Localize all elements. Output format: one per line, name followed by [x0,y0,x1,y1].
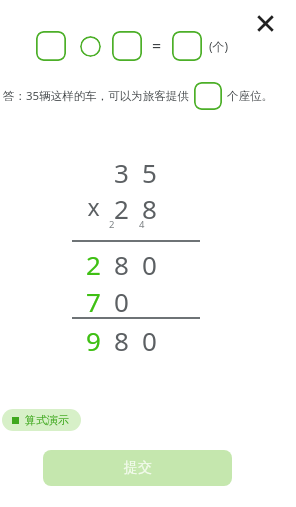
staticText: 4 [139,218,145,231]
button[interactable]: Close [251,9,279,37]
staticText: 7 [86,284,101,319]
staticText: x [87,191,100,222]
button[interactable]: Answer blank [36,31,66,61]
staticText: 0 [142,323,157,358]
staticText: 8 [142,191,157,226]
button[interactable]: Operator blank [80,36,101,57]
staticText: 5 [142,155,157,190]
staticText: (个) [209,38,229,54]
staticText: 2 [86,247,101,282]
staticText: 2 [114,191,129,226]
button[interactable]: Answer blank [194,82,222,110]
button[interactable]: 提交 [43,450,232,486]
staticText: 8 [114,247,129,282]
staticText: 3 [114,155,129,190]
button[interactable]: Answer blank [172,31,202,61]
staticText: 个座位。 [227,89,273,103]
staticText: 提交 [124,459,152,477]
staticText: 0 [114,284,129,319]
staticText: 9 [86,323,101,358]
staticText: 0 [142,247,157,282]
staticText: = [152,35,162,57]
staticText: 答：35辆这样的车，可以为旅客提供 [3,88,189,104]
staticText: 算式演示 [25,413,69,427]
button[interactable]: 算式演示 [2,409,81,431]
staticText: 8 [114,323,129,358]
staticText: 2 [109,218,115,231]
button[interactable]: Answer blank [112,31,142,61]
